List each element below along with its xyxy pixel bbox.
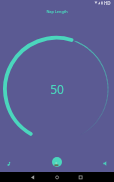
button[interactable]: Back [22,172,44,182]
staticText: 50 [50,81,64,97]
button[interactable]: Nap sounds [1,155,17,171]
button[interactable]: Volume [98,156,112,170]
staticText: HD [104,0,111,6]
button[interactable]: Nap Length [0,5,114,18]
button[interactable]: Recent apps [70,172,92,182]
button[interactable]: Start nap [52,157,62,167]
staticText: Nap Length [46,9,68,14]
button[interactable]: Home [46,172,68,182]
button[interactable]: Nap length 50 minutes [4,36,110,143]
